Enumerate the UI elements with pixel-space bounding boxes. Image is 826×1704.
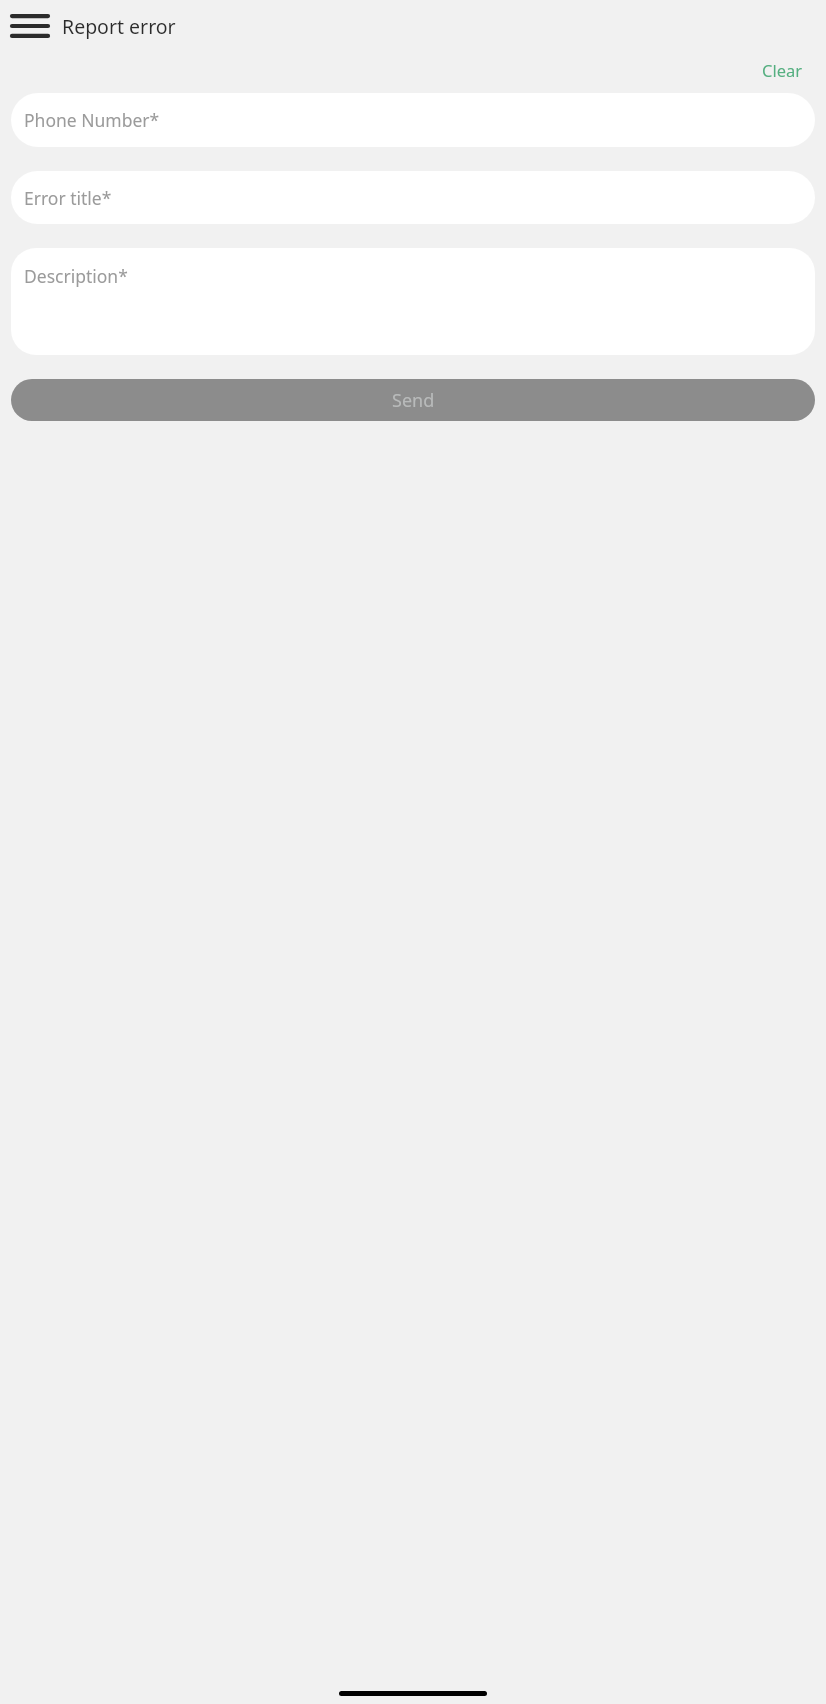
button[interactable]: Phone Number* [11,93,815,147]
button[interactable]: Clear [756,52,809,88]
staticText: Send [392,388,435,413]
button[interactable]: Description* [11,248,815,355]
button[interactable]: Error title* [11,171,815,224]
staticText: Description* [24,264,128,288]
staticText: Error title* [24,186,112,210]
button[interactable]: Open navigation menu [0,0,59,52]
button[interactable]: Send [11,379,815,421]
staticText: Phone Number* [24,108,160,132]
staticText: Clear [762,59,803,81]
staticText: Report error [62,13,176,40]
